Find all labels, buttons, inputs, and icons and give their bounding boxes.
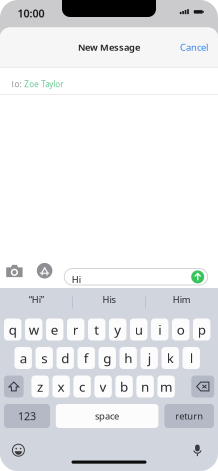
button[interactable]: g: [98, 347, 116, 369]
button[interactable]: h: [119, 347, 137, 369]
button[interactable]: t: [88, 318, 105, 340]
staticText: 10:00: [17, 6, 44, 20]
button[interactable]: s: [35, 347, 53, 369]
staticText: return: [175, 410, 203, 422]
button[interactable]: a: [14, 347, 32, 369]
staticText: h: [124, 349, 132, 367]
button[interactable]: y: [109, 318, 126, 340]
staticText: “Hi”: [29, 293, 44, 306]
button[interactable]: p: [193, 318, 210, 340]
button[interactable]: z: [31, 375, 49, 397]
staticText: l: [190, 349, 193, 367]
staticText: o: [177, 321, 185, 338]
button[interactable]: q: [4, 318, 21, 340]
staticText: i: [158, 321, 161, 338]
staticText: z: [37, 378, 43, 395]
button[interactable]: n: [136, 375, 154, 397]
button[interactable]: His: [73, 288, 145, 310]
staticText: j: [148, 349, 151, 367]
staticText: g: [103, 349, 111, 367]
staticText: Him: [173, 293, 191, 306]
staticText: m: [160, 378, 172, 395]
button[interactable]: x: [52, 375, 70, 397]
button[interactable]: Emoji: [12, 444, 25, 457]
staticText: Hi: [72, 273, 81, 286]
staticText: His: [102, 293, 115, 306]
staticText: Zoe Taylor: [24, 79, 63, 89]
button[interactable]: Him: [145, 288, 218, 310]
staticText: y: [114, 321, 121, 338]
staticText: b: [120, 378, 128, 395]
staticText: t: [94, 321, 99, 338]
staticText: n: [141, 378, 149, 395]
staticText: Cancel: [180, 41, 208, 53]
button[interactable]: i: [151, 318, 168, 340]
staticText: 123: [18, 409, 36, 423]
staticText: a: [20, 349, 27, 367]
staticText: space: [95, 410, 119, 422]
button[interactable]: Dictate: [193, 444, 203, 457]
staticText: k: [167, 349, 174, 367]
button[interactable]: Apps: [37, 263, 52, 278]
staticText: e: [51, 321, 59, 338]
staticText: c: [79, 378, 85, 395]
button[interactable]: “Hi”: [0, 288, 73, 310]
button[interactable]: Delete: [191, 375, 214, 397]
staticText: To:: [11, 79, 22, 89]
button[interactable]: return: [164, 404, 214, 428]
staticText: w: [29, 321, 39, 338]
button[interactable]: Send: [191, 270, 204, 283]
button[interactable]: r: [67, 318, 84, 340]
button[interactable]: c: [73, 375, 91, 397]
button[interactable]: e: [46, 318, 63, 340]
button[interactable]: o: [172, 318, 189, 340]
button[interactable]: u: [130, 318, 147, 340]
button[interactable]: space: [56, 404, 158, 428]
button[interactable]: j: [140, 347, 158, 369]
button[interactable]: m: [157, 375, 175, 397]
staticText: r: [73, 321, 79, 338]
button[interactable]: Cancel: [172, 33, 216, 61]
staticText: x: [58, 378, 65, 395]
staticText: v: [100, 378, 107, 395]
button[interactable]: d: [56, 347, 74, 369]
staticText: New Message: [78, 41, 140, 53]
button[interactable]: Shift: [4, 375, 24, 397]
staticText: p: [198, 321, 206, 338]
button[interactable]: l: [182, 347, 200, 369]
button[interactable]: w: [25, 318, 42, 340]
staticText: u: [135, 321, 143, 338]
staticText: f: [84, 349, 89, 367]
button[interactable]: b: [115, 375, 133, 397]
staticText: d: [61, 349, 69, 367]
button[interactable]: f: [77, 347, 95, 369]
staticText: s: [41, 349, 47, 367]
button[interactable]: 123: [4, 404, 50, 428]
button[interactable]: Take photo: [6, 264, 23, 277]
button[interactable]: v: [94, 375, 112, 397]
button[interactable]: k: [161, 347, 179, 369]
staticText: q: [9, 321, 17, 338]
